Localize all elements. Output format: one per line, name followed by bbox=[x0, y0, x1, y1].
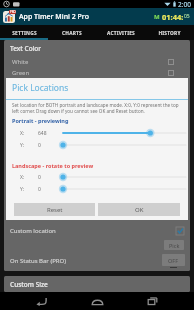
button[interactable]: Home bbox=[82, 292, 112, 310]
button[interactable]: Recents bbox=[138, 292, 168, 310]
button[interactable]: ACTIVITIES bbox=[96, 25, 145, 38]
staticText: SETTINGS bbox=[12, 30, 37, 37]
staticText: HISTORY bbox=[158, 30, 181, 37]
staticText: Y: bbox=[20, 186, 25, 193]
staticText: 05 bbox=[184, 13, 190, 20]
staticText: Set location for BOTH portrait and lands… bbox=[12, 102, 183, 114]
staticText: Custom Size bbox=[10, 280, 48, 289]
staticText: White bbox=[12, 58, 29, 66]
staticText: 648 bbox=[38, 130, 47, 137]
staticText: M bbox=[154, 13, 160, 21]
staticText: Portrait - previewing bbox=[12, 117, 69, 124]
staticText: OFF bbox=[168, 257, 179, 264]
staticText: Green bbox=[12, 69, 30, 77]
button[interactable]: White bbox=[4, 58, 190, 66]
button[interactable]: Back bbox=[26, 292, 56, 310]
staticText: 01:44: bbox=[162, 12, 184, 22]
staticText: PRO bbox=[10, 10, 16, 14]
staticText: CHARTS bbox=[62, 30, 82, 37]
staticText: ACTIVITIES bbox=[107, 30, 135, 37]
button[interactable]: HISTORY bbox=[145, 25, 194, 38]
staticText: Custom location bbox=[10, 227, 56, 235]
staticText: 2:00 bbox=[178, 0, 191, 8]
staticText: Y: bbox=[20, 142, 25, 149]
staticText: 0 bbox=[38, 142, 41, 149]
staticText: On Status Bar (PRO) bbox=[10, 257, 67, 265]
staticText: Pick bbox=[169, 242, 180, 249]
button[interactable]: SETTINGS bbox=[0, 25, 48, 38]
button[interactable]: Reset bbox=[14, 203, 95, 216]
staticText: Pick Locations bbox=[12, 82, 69, 94]
staticText: Landscape - rotate to preview bbox=[12, 162, 94, 169]
button[interactable]: OFF bbox=[162, 254, 185, 266]
button[interactable]: CHARTS bbox=[48, 25, 96, 38]
staticText: OK bbox=[135, 206, 144, 214]
button[interactable]: Pick bbox=[164, 240, 184, 250]
staticText: Reset bbox=[47, 206, 63, 214]
button[interactable]: Green bbox=[4, 69, 190, 77]
staticText: X: bbox=[20, 174, 25, 181]
staticText: X: bbox=[20, 130, 25, 137]
staticText: Text Color bbox=[10, 44, 42, 53]
button[interactable]: Custom location bbox=[4, 224, 190, 238]
staticText: App Timer Mini 2 Pro bbox=[19, 12, 89, 22]
staticText: 0 bbox=[38, 186, 41, 193]
staticText: 0 bbox=[38, 174, 41, 181]
button[interactable]: OK bbox=[98, 203, 180, 216]
